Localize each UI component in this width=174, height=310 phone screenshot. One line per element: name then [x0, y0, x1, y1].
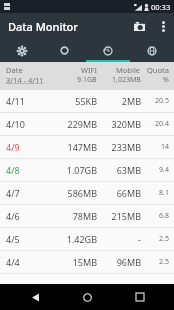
staticText: 1.07GB: [55, 164, 97, 176]
button[interactable]: 4/4: [0, 251, 174, 273]
button[interactable]: 4/9: [0, 136, 174, 158]
staticText: 4/8: [6, 164, 55, 176]
staticText: 55KB: [55, 95, 97, 107]
button[interactable]: 4/10: [0, 113, 174, 135]
staticText: 215MB: [97, 210, 141, 222]
staticText: 8.1: [141, 188, 169, 198]
staticText: 00:33: [151, 2, 171, 12]
button[interactable]: 4/11: [0, 90, 174, 112]
staticText: 20.5: [141, 96, 169, 106]
staticText: 15MB: [55, 256, 97, 268]
button[interactable]: Home: [69, 284, 105, 310]
staticText: 4/9: [6, 141, 55, 153]
button[interactable]: 4/7: [0, 182, 174, 204]
staticText: 147MB: [55, 141, 97, 153]
button[interactable]: Live usage: [43, 39, 86, 62]
button[interactable]: Network: [130, 39, 174, 62]
staticText: Data Monitor: [8, 19, 78, 34]
staticText: Quota: [147, 65, 169, 75]
staticText: 233MB: [97, 141, 141, 153]
staticText: 9.1GB: [77, 75, 97, 85]
staticText: 6.8: [141, 211, 169, 221]
staticText: 4/11: [6, 95, 55, 107]
staticText: Mobile: [116, 65, 141, 75]
staticText: WIFI: [81, 65, 97, 75]
staticText: 2MB: [97, 95, 141, 107]
staticText: 2.5: [141, 257, 169, 267]
button[interactable]: 4/6: [0, 205, 174, 227]
staticText: -: [97, 233, 141, 245]
staticText: 66MB: [97, 187, 141, 199]
staticText: 4/5: [6, 233, 55, 245]
staticText: %: [163, 75, 169, 85]
staticText: 20.4: [141, 119, 169, 129]
staticText: 320MB: [97, 118, 141, 130]
button[interactable]: Back: [17, 284, 53, 310]
button[interactable]: 4/5: [0, 228, 174, 250]
staticText: 229MB: [55, 118, 97, 130]
staticText: 63MB: [97, 164, 141, 176]
button[interactable]: 4/8: [0, 159, 174, 181]
staticText: 4/4: [6, 256, 55, 268]
button[interactable]: 3/14 - 4/11: [6, 75, 44, 85]
button[interactable]: History: [86, 39, 130, 62]
staticText: 78MB: [55, 210, 97, 222]
staticText: 4/10: [6, 118, 55, 130]
staticText: 2.5: [141, 234, 169, 244]
staticText: 586MB: [55, 187, 97, 199]
staticText: 14: [141, 142, 169, 152]
staticText: Date: [6, 65, 23, 75]
staticText: 1,023MB: [112, 75, 141, 85]
staticText: 4/7: [6, 187, 55, 199]
staticText: 9.4: [141, 165, 169, 175]
button[interactable]: Settings: [0, 39, 43, 62]
button[interactable]: Recent apps: [122, 284, 158, 310]
staticText: 4/6: [6, 210, 55, 222]
button[interactable]: Screenshot: [126, 13, 152, 39]
staticText: 96MB: [97, 256, 141, 268]
staticText: 1.42GB: [55, 233, 97, 245]
button[interactable]: More options: [152, 13, 174, 39]
